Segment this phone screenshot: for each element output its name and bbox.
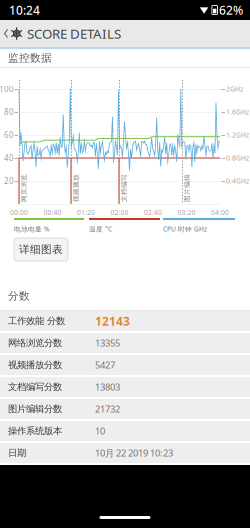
- staticText: 40: [4, 153, 14, 163]
- staticText: 图片编辑: [176, 187, 204, 195]
- staticText: 13803: [95, 381, 120, 393]
- button[interactable]: SCORE DETAILS: [0, 18, 121, 49]
- staticText: 5427: [95, 359, 115, 371]
- staticText: 电池电量 %: [14, 225, 50, 233]
- staticText: 详细图表: [19, 243, 63, 256]
- staticText: 日期: [8, 447, 26, 459]
- staticText: 文档编写分数: [8, 381, 62, 393]
- staticText: 00:00: [10, 208, 28, 217]
- staticText: CPU 时钟 GHz: [163, 225, 207, 233]
- staticText: 分数: [8, 289, 30, 302]
- staticText: 02:40: [144, 208, 162, 217]
- staticText: SCORE DETAILS: [27, 25, 121, 42]
- button[interactable]: 详细图表: [14, 238, 68, 261]
- staticText: 0.4GHz: [226, 177, 249, 185]
- staticText: 1.2GHz: [226, 131, 249, 139]
- staticText: 10: [95, 425, 105, 437]
- staticText: 12143: [95, 313, 130, 329]
- staticText: 00:40: [43, 208, 61, 217]
- staticText: 13355: [95, 337, 120, 349]
- staticText: 62%: [219, 2, 243, 18]
- staticText: 100: [0, 84, 14, 94]
- staticText: 1.6GHz: [226, 108, 249, 116]
- staticText: 网络浏览分数: [8, 337, 62, 349]
- staticText: 工作效能 分数: [8, 315, 65, 327]
- staticText: 温度 °C: [89, 225, 112, 233]
- staticText: 01:20: [77, 208, 95, 217]
- staticText: 2GHz: [226, 85, 243, 93]
- staticText: 02:00: [110, 208, 128, 217]
- staticText: 图片编辑分数: [8, 403, 62, 415]
- staticText: 80: [4, 107, 14, 117]
- staticText: 监控数据: [8, 51, 52, 64]
- staticText: 10:24: [9, 2, 40, 18]
- staticText: 20: [4, 176, 14, 186]
- staticText: 文档编写: [113, 187, 141, 195]
- staticText: 60: [4, 130, 14, 140]
- staticText: 视频播放: [65, 187, 93, 195]
- staticText: 10月 22 2019 10:23: [95, 447, 173, 459]
- staticText: 04:00: [211, 208, 229, 217]
- staticText: 21732: [95, 403, 120, 415]
- staticText: 网页浏览: [13, 187, 41, 195]
- staticText: 03:20: [177, 208, 195, 217]
- staticText: 视频播放分数: [8, 359, 62, 371]
- staticText: 操作系统版本: [8, 425, 62, 437]
- staticText: 0.8GHz: [226, 154, 249, 162]
